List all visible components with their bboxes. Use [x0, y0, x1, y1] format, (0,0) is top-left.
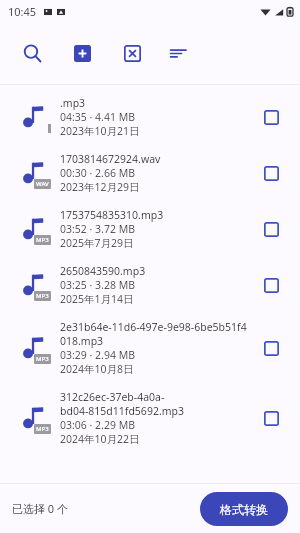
staticText: MP3	[36, 236, 49, 244]
staticText: 1753754835310.mp3	[60, 208, 164, 222]
staticText: MP3	[36, 292, 49, 300]
staticText: 312c26ec-37eb-4a0a-bd04-815d11fd5692.mp3	[60, 390, 248, 418]
staticText: 已选择 0 个	[12, 501, 69, 516]
button[interactable]: MP3	[0, 257, 300, 313]
staticText: 03:25 · 3.28 MB	[60, 278, 136, 292]
staticText: 04:35 · 4.41 MB	[60, 110, 136, 124]
button[interactable]: Select 2e31b64e-11d6-497e-9e98-6be5b51f4…	[256, 333, 286, 363]
staticText: 03:29 · 2.94 MB	[60, 348, 136, 362]
staticText: 2e31b64e-11d6-497e-9e98-6be5b51f4018.mp3	[60, 320, 248, 348]
button[interactable]: .mp3	[0, 89, 300, 145]
staticText: MP3	[36, 425, 49, 433]
staticText: .mp3	[60, 96, 86, 110]
button[interactable]: Sort	[158, 33, 198, 73]
button[interactable]: Select 1703814672924.wav	[256, 158, 286, 188]
button[interactable]: MP3	[0, 313, 300, 383]
button[interactable]: Add	[62, 33, 102, 73]
staticText: 03:52 · 3.72 MB	[60, 222, 136, 236]
staticText: 03:06 · 2.29 MB	[60, 418, 136, 432]
staticText: 2024年10月8日	[60, 362, 134, 376]
staticText: 2023年12月29日	[60, 180, 140, 194]
button[interactable]: Select .mp3	[256, 102, 286, 132]
staticText: 2025年1月14日	[60, 292, 134, 306]
button[interactable]: Search	[12, 33, 52, 73]
staticText: 2650843590.mp3	[60, 264, 146, 278]
staticText: WAV	[36, 180, 49, 188]
staticText: 1703814672924.wav	[60, 152, 161, 166]
staticText: MP3	[36, 355, 49, 363]
button[interactable]: 格式转换	[200, 492, 288, 526]
button[interactable]: Select 1753754835310.mp3	[256, 214, 286, 244]
button[interactable]: WAV	[0, 145, 300, 201]
button[interactable]: Clear selection	[112, 33, 152, 73]
button[interactable]: Select 312c26ec-37eb-4a0a-bd04-815d11fd5…	[256, 403, 286, 433]
button[interactable]: Select 2650843590.mp3	[256, 270, 286, 300]
staticText: 10:45	[8, 4, 37, 19]
staticText: 格式转换	[220, 502, 268, 517]
button[interactable]: MP3	[0, 201, 300, 257]
staticText: 2024年10月22日	[60, 432, 140, 446]
staticText: 2025年7月29日	[60, 236, 134, 250]
staticText: 00:30 · 2.66 MB	[60, 166, 136, 180]
button[interactable]: MP3	[0, 383, 300, 453]
staticText: 2023年10月21日	[60, 124, 140, 138]
